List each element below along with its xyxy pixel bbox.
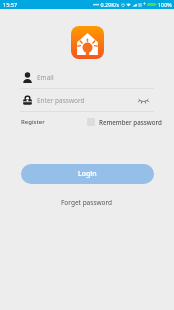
staticText: 100% [158,1,172,8]
staticText: Login [78,169,97,179]
staticText: ••• 0.29K/s [93,1,120,8]
staticText: 15:57 [3,1,18,8]
button[interactable]: Remember password [87,116,162,128]
staticText: + [143,1,146,8]
staticText: Register [21,118,45,126]
button[interactable]: Forget password [59,196,115,209]
staticText: Email [37,73,54,82]
button[interactable]: Register [20,116,46,128]
button[interactable]: Show password [136,93,150,107]
staticText: Enter password [37,96,85,105]
staticText: Remember password [99,118,162,126]
button[interactable]: Enter password [0,89,174,112]
button[interactable]: Login [21,164,154,184]
button[interactable]: Email [0,66,174,89]
staticText: Forget password [61,198,113,207]
